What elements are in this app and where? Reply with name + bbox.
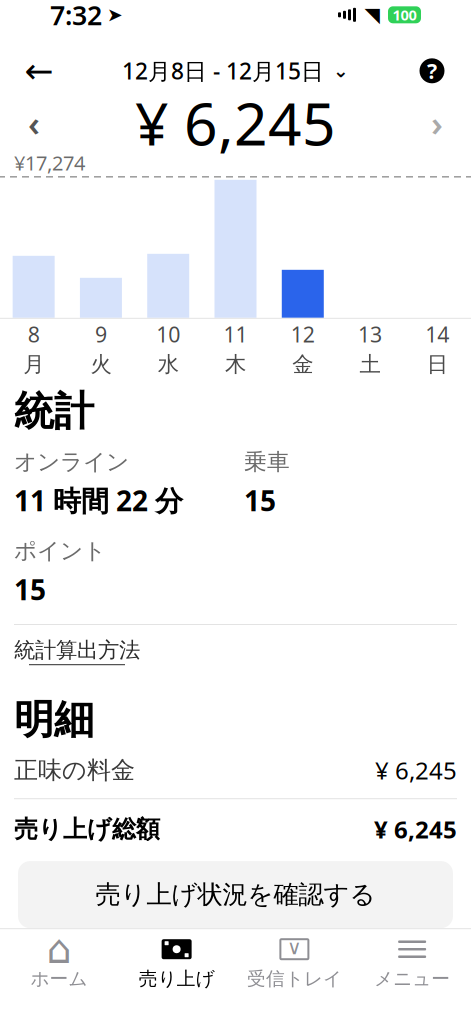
staticText: 10 [156,320,180,348]
staticText: ⌄ [333,60,349,81]
staticText: 15 [244,482,276,519]
staticText: 水 [158,351,179,378]
staticText: 14 [425,320,449,348]
staticText: 土 [360,351,381,378]
staticText: ¥ 6,245 [374,813,457,845]
staticText: 8 [28,320,40,348]
staticText: ¥17,274 [14,149,85,176]
staticText: › [431,100,443,146]
staticText: 売り上げ総額 [14,814,160,844]
button[interactable]: Back [16,48,62,94]
staticText: 13 [358,320,382,348]
staticText: ➤ [107,4,123,25]
button[interactable]: 統計算出方法 [14,625,457,677]
staticText: 売り上げ状況を確認する [95,879,375,910]
staticText: ¥ 6,245 [135,84,336,162]
staticText: ホーム [30,967,87,990]
button[interactable]: 売り上げ [118,936,236,990]
staticText: ‹ [28,100,40,146]
staticText: 11 時間 22 分 [14,482,183,519]
staticText: ∨ [287,936,302,959]
staticText: 受信トレイ [247,967,342,990]
staticText: 金 [292,351,313,378]
button[interactable]: ⌂ [0,936,118,990]
staticText: 9 [95,320,107,348]
button[interactable]: ∨ [235,936,353,990]
staticText: 明細 [14,695,94,744]
button[interactable]: メニュー [353,936,471,990]
staticText: ⌂ [46,926,71,972]
staticText: 7:32 [50,0,102,32]
staticText: オンライン [14,448,129,476]
staticText: ? [427,57,437,85]
staticText: 統計 [14,387,94,436]
staticText: ¥ 6,245 [375,754,457,786]
staticText: 日 [427,351,448,378]
button[interactable]: Next week [415,101,459,145]
staticText: ポイント [14,537,106,565]
staticText: 売り上げ [139,967,215,990]
staticText: 乗車 [244,448,290,476]
button[interactable]: 12月8日 - 12月15日 [116,48,355,94]
staticText: 12月8日 - 12月15日 [122,56,324,86]
staticText: 月 [23,351,44,378]
staticText: 統計算出方法 [14,637,140,663]
staticText: ← [24,51,53,90]
staticText: 12 [291,320,315,348]
button[interactable]: 売り上げ状況を確認する [18,861,453,928]
staticText: 15 [14,571,46,608]
staticText: 火 [90,351,111,378]
staticText: 100 [392,5,416,25]
staticText: 木 [225,351,246,378]
staticText: ◥ [364,3,379,26]
staticText: 11 [223,320,247,348]
staticText: 正味の料金 [14,755,135,785]
staticText: メニュー [374,967,450,990]
button[interactable]: Help [409,48,455,94]
button[interactable]: Previous week [12,101,56,145]
